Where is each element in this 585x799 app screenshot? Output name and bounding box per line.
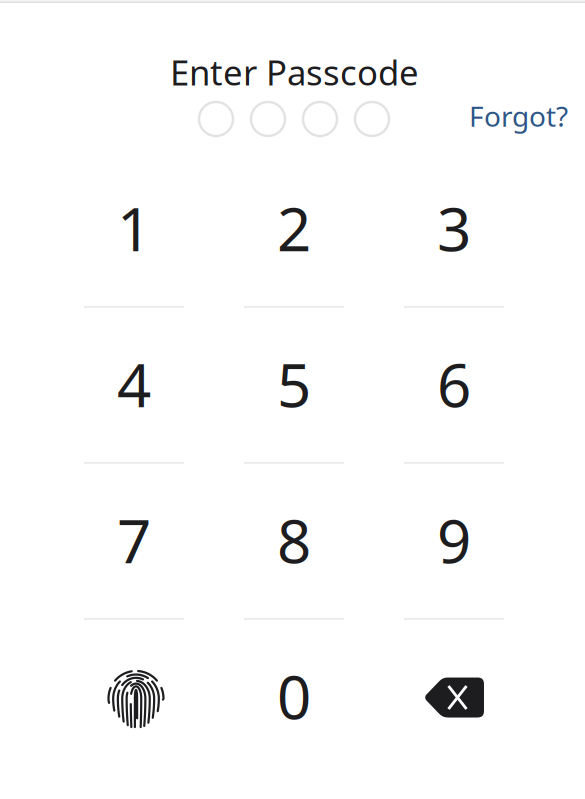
button[interactable]: 7 <box>54 462 214 618</box>
button[interactable]: 5 <box>214 306 374 462</box>
button[interactable]: Delete <box>374 618 534 774</box>
staticText: Enter Passcode <box>170 49 419 95</box>
button[interactable]: 0 <box>214 618 374 774</box>
staticText: 9 <box>437 500 471 580</box>
staticText: 8 <box>277 500 311 580</box>
button[interactable]: 1 <box>54 150 214 306</box>
staticText: Forgot? <box>469 97 568 135</box>
staticText: 5 <box>277 344 311 424</box>
button[interactable]: 3 <box>374 150 534 306</box>
staticText: 1 <box>117 188 151 268</box>
staticText: 3 <box>437 188 471 268</box>
staticText: 0 <box>277 656 311 736</box>
staticText: 4 <box>117 344 151 424</box>
staticText: 2 <box>277 188 311 268</box>
button[interactable]: 9 <box>374 462 534 618</box>
staticText: 7 <box>117 500 151 580</box>
button[interactable]: Touch ID <box>54 618 214 774</box>
button[interactable]: 4 <box>54 306 214 462</box>
button[interactable]: 6 <box>374 306 534 462</box>
button[interactable]: 8 <box>214 462 374 618</box>
staticText: 6 <box>437 344 471 424</box>
button[interactable]: Forgot? <box>469 94 585 138</box>
button[interactable]: 2 <box>214 150 374 306</box>
